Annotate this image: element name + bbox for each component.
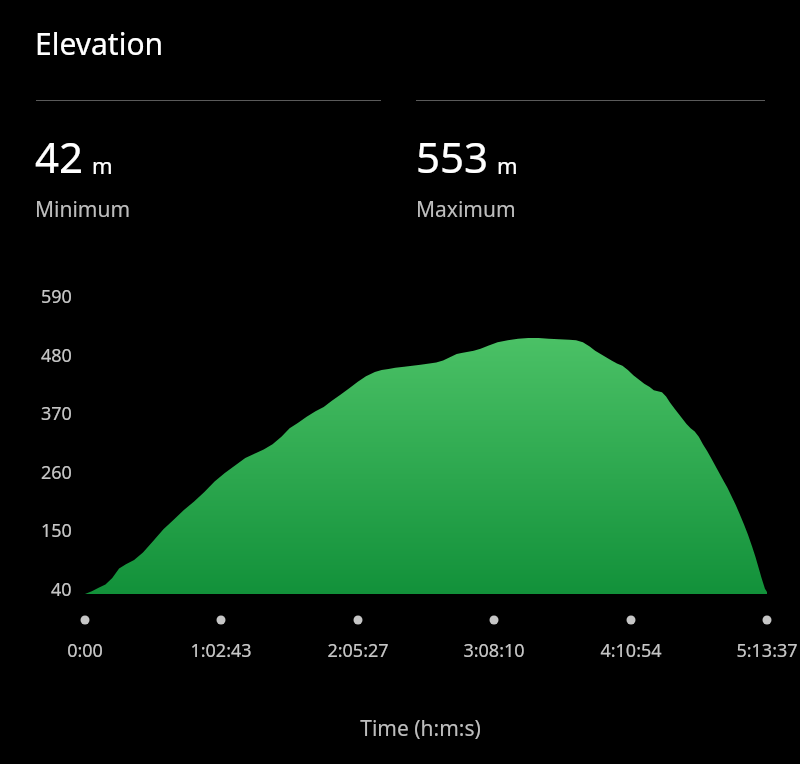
button[interactable]: Maximum elevation 553 metres (416, 128, 746, 228)
staticText: 1:02:43 (190, 638, 252, 663)
staticText: 4:10:54 (600, 638, 662, 663)
staticText: Time (h:m:s) (360, 714, 481, 743)
staticText: Elevation (35, 23, 164, 64)
staticText: Maximum (416, 195, 516, 224)
staticText: 42 (35, 128, 84, 185)
staticText: 150 (41, 518, 72, 542)
button[interactable]: Minimum elevation 42 metres (35, 128, 365, 228)
staticText: 260 (41, 460, 72, 484)
staticText: 40 (51, 577, 72, 601)
staticText: 5:13:37 (736, 638, 798, 663)
staticText: 480 (41, 343, 72, 367)
staticText: 370 (41, 401, 72, 425)
staticText: 0:00 (67, 638, 103, 663)
staticText: m (497, 150, 518, 180)
staticText: 553 (416, 128, 489, 185)
staticText: 590 (41, 284, 72, 308)
staticText: Minimum (35, 195, 131, 224)
staticText: 3:08:10 (463, 638, 525, 663)
staticText: m (92, 150, 113, 180)
staticText: 2:05:27 (327, 638, 389, 663)
